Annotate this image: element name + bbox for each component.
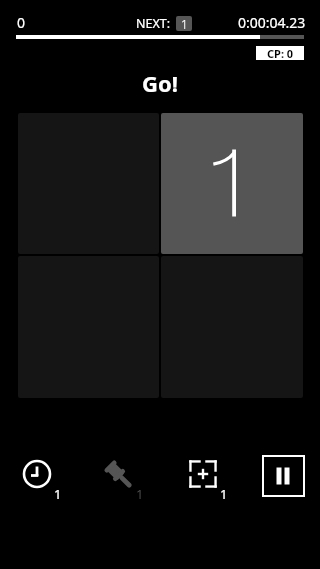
staticText: CP: 0 xyxy=(267,46,294,60)
staticText: Go! xyxy=(142,68,178,98)
staticText: 1 xyxy=(220,485,228,503)
staticText: 1 xyxy=(136,485,144,503)
button[interactable]: Add tile xyxy=(181,452,225,496)
staticText: 0:00:04.23 xyxy=(238,13,306,32)
staticText: 0 xyxy=(17,13,26,32)
button[interactable]: Pause xyxy=(262,455,305,497)
staticText: 1 xyxy=(181,16,188,31)
staticText: 1 xyxy=(54,485,62,503)
button[interactable]: Hammer xyxy=(97,452,141,496)
button[interactable]: Tile 1 xyxy=(161,113,303,254)
staticText: NEXT: xyxy=(136,15,171,32)
button[interactable]: Freeze time xyxy=(15,452,59,496)
